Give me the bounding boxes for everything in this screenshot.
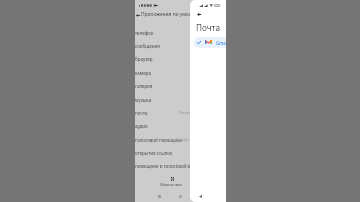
button[interactable]: Назад [135, 10, 140, 20]
staticText: аудио [135, 123, 148, 129]
staticText: Gmail [179, 110, 190, 115]
button[interactable]: Инструкции [165, 176, 179, 182]
button[interactable]: музыка [135, 93, 226, 106]
staticText: музыка [135, 97, 152, 103]
staticText: камера [135, 70, 151, 76]
button[interactable]: голосовой помощник [135, 133, 226, 146]
button[interactable]: камера [135, 66, 226, 79]
staticText: помощник и голосовой ввод [135, 163, 199, 169]
button[interactable]: открытие ссылок [135, 146, 226, 159]
button[interactable]: Недавние приложения [153, 191, 165, 202]
button[interactable]: почта [135, 106, 226, 119]
staticText: сообщения [135, 43, 160, 49]
button[interactable]: галерея [135, 79, 226, 92]
staticText: голосовой помощник [135, 137, 183, 143]
staticText: галерея [135, 83, 153, 89]
button[interactable]: Главный экран [174, 191, 186, 202]
button[interactable]: браузер [135, 52, 226, 65]
staticText: Gmail [216, 40, 226, 46]
button[interactable]: Gmail [194, 37, 226, 48]
staticText: Приложения по умолчанию [141, 11, 208, 18]
staticText: Google [176, 137, 190, 142]
button[interactable]: помощник и голосовой ввод [135, 159, 226, 172]
staticText: открытие ссылок [135, 150, 173, 156]
staticText: Обратная связь [160, 183, 183, 187]
button[interactable]: Назад [195, 10, 203, 18]
staticText: Google [176, 163, 190, 168]
staticText: браузер [135, 56, 153, 62]
button[interactable]: Назад [195, 191, 206, 202]
button[interactable]: телефон [135, 26, 226, 39]
button[interactable]: аудио [135, 119, 226, 132]
staticText: телефон [135, 30, 154, 36]
staticText: Почта [196, 22, 220, 33]
staticText: почта [135, 110, 148, 116]
button[interactable]: сообщения [135, 39, 226, 52]
